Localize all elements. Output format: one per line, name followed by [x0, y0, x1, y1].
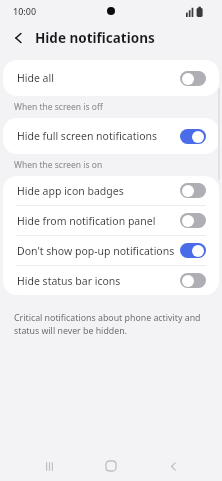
- staticText: Hide all: [17, 71, 54, 85]
- button[interactable]: On: [180, 243, 206, 258]
- button[interactable]: Hide full screen notifications: [3, 118, 219, 154]
- button[interactable]: Hide app icon badges: [3, 176, 219, 205]
- button[interactable]: Off: [180, 183, 206, 198]
- staticText: Hide full screen notifications: [17, 129, 158, 143]
- staticText: Critical notifications about phone activ…: [14, 312, 206, 337]
- button[interactable]: Back: [160, 453, 186, 479]
- staticText: When the screen is on: [14, 159, 103, 171]
- button[interactable]: Don't show pop-up notifications: [3, 236, 219, 265]
- staticText: Don't show pop-up notifications: [17, 244, 175, 258]
- staticText: Hide from notification panel: [17, 214, 156, 228]
- staticText: Hide app icon badges: [17, 184, 124, 198]
- button[interactable]: Hide from notification panel: [3, 206, 219, 235]
- staticText: When the screen is off: [14, 101, 103, 113]
- button[interactable]: Off: [180, 213, 206, 228]
- button[interactable]: Off: [180, 273, 206, 288]
- button[interactable]: Back: [8, 27, 30, 49]
- staticText: Hide notifications: [35, 29, 155, 47]
- button[interactable]: Recents: [36, 453, 62, 479]
- button[interactable]: Hide all: [3, 60, 219, 96]
- button[interactable]: Home: [98, 453, 124, 479]
- button[interactable]: Off: [180, 71, 206, 86]
- staticText: Hide status bar icons: [17, 274, 121, 288]
- button[interactable]: Hide status bar icons: [3, 266, 219, 295]
- button[interactable]: On: [180, 129, 206, 144]
- staticText: 10:00: [13, 5, 37, 17]
